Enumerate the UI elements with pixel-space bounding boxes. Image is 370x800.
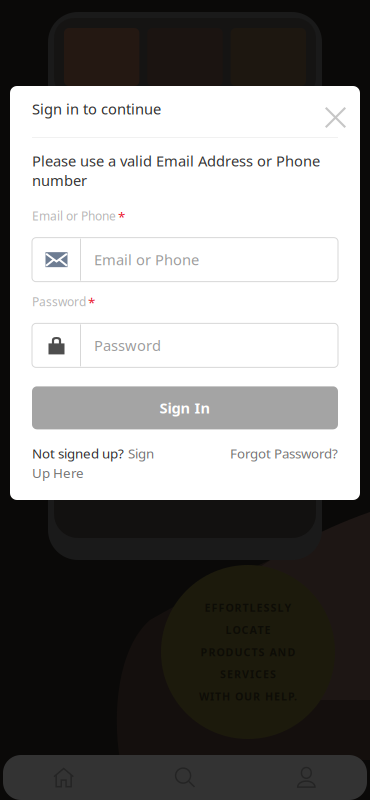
button[interactable]: Profile — [246, 755, 367, 800]
button[interactable]: Sign In — [32, 386, 338, 429]
staticText: Sign In — [159, 398, 210, 418]
staticText: Email or Phone — [94, 250, 199, 269]
staticText: PRODUCTS AND — [200, 645, 295, 659]
staticText: Password — [94, 336, 161, 355]
staticText: * — [88, 294, 95, 311]
staticText: Sign in to continue — [32, 99, 161, 118]
staticText: Forgot Password? — [230, 444, 338, 462]
staticText: WITH OUR HELP. — [199, 689, 297, 703]
staticText: Password — [32, 294, 86, 310]
staticText: Please use a valid Email Address or Phon… — [32, 151, 320, 190]
staticText: EFFORTLESSLY — [204, 601, 291, 615]
button[interactable]: Not signed up? — [32, 444, 154, 482]
staticText: LOCATE — [225, 623, 270, 637]
staticText: Not signed up? — [32, 444, 124, 462]
button[interactable]: Close — [325, 95, 346, 128]
staticText: Up Here — [32, 464, 84, 482]
staticText: Email or Phone — [32, 208, 116, 224]
button[interactable]: Home — [3, 755, 124, 800]
button[interactable]: Forgot Password? — [230, 444, 338, 462]
staticText: SERVICES — [220, 667, 276, 681]
staticText: Sign — [128, 444, 154, 462]
staticText: * — [118, 208, 125, 226]
